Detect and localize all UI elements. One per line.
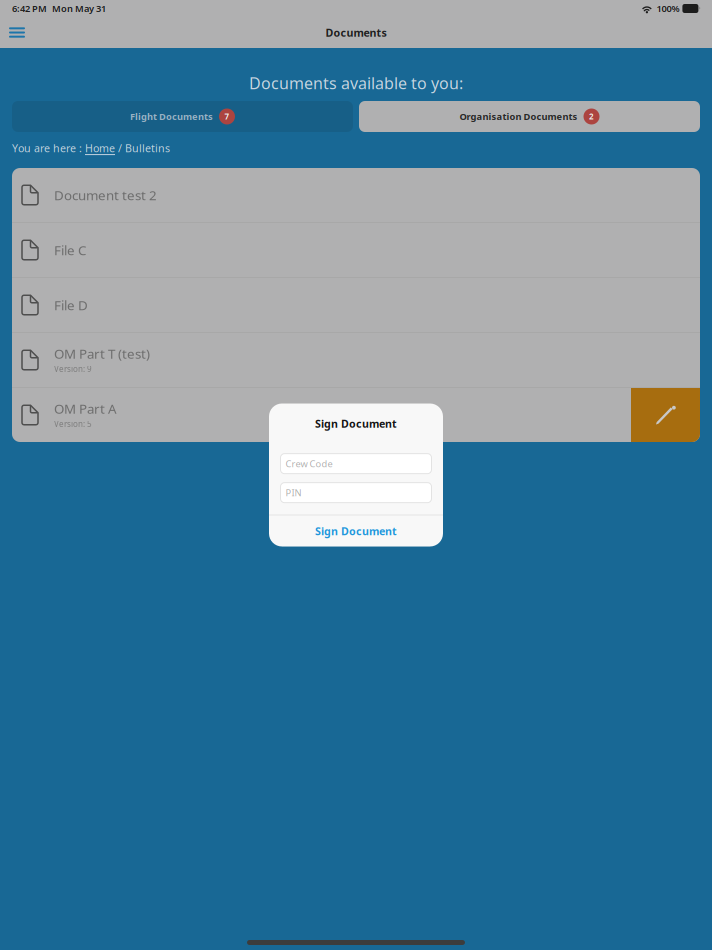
- button[interactable]: Document test 2: [12, 168, 700, 222]
- staticText: Mon May 31: [52, 2, 106, 15]
- staticText: Home: [85, 141, 115, 155]
- staticText: Flight Documents: [130, 110, 213, 123]
- staticText: OM Part T (test): [54, 345, 150, 362]
- button[interactable]: Sign document: [631, 388, 700, 442]
- staticText: Sign Document: [315, 524, 397, 538]
- button[interactable]: Flight Documents: [12, 101, 353, 132]
- staticText: 7: [224, 111, 229, 122]
- button[interactable]: File D: [12, 278, 700, 332]
- staticText: File C: [54, 241, 86, 259]
- staticText: 2: [589, 111, 594, 122]
- staticText: PIN: [285, 486, 301, 499]
- staticText: Document test 2: [54, 186, 157, 204]
- button[interactable]: Menu: [9, 17, 43, 48]
- staticText: Sign Document: [315, 416, 397, 431]
- staticText: Documents available to you:: [249, 72, 463, 94]
- staticText: / Bulletins: [115, 141, 170, 155]
- staticText: 100%: [656, 2, 679, 15]
- staticText: OM Part A: [54, 400, 117, 417]
- staticText: 6:42 PM: [12, 2, 47, 15]
- button[interactable]: Organisation Documents: [359, 101, 700, 132]
- staticText: You are here :: [12, 141, 85, 155]
- button[interactable]: Sign Document: [269, 515, 443, 546]
- button[interactable]: File C: [12, 223, 700, 277]
- button[interactable]: Home: [85, 141, 115, 155]
- button[interactable]: OM Part T (test): [12, 333, 700, 387]
- staticText: Version: 9: [54, 364, 92, 374]
- button[interactable]: OM Part A: [12, 388, 700, 442]
- staticText: File D: [54, 296, 88, 314]
- staticText: Organisation Documents: [459, 110, 577, 123]
- staticText: Crew Code: [285, 457, 332, 470]
- staticText: Version: 5: [54, 419, 92, 429]
- staticText: Documents: [325, 25, 386, 40]
